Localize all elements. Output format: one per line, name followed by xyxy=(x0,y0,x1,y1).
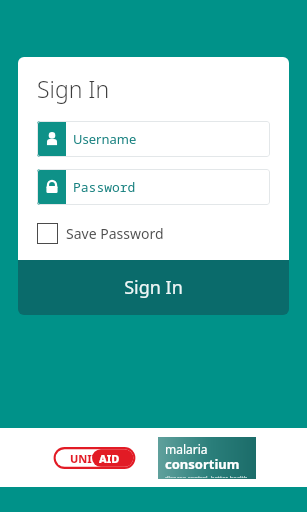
staticText: Save Password xyxy=(66,224,164,243)
staticText: UNIT xyxy=(70,451,99,466)
button[interactable]: Sign In xyxy=(18,260,289,315)
staticText: Sign In xyxy=(37,73,110,104)
button[interactable]: Username xyxy=(37,121,270,157)
staticText: malaria xyxy=(165,441,208,457)
staticText: disease control, better health xyxy=(165,474,248,478)
button[interactable]: Save Password xyxy=(37,222,164,245)
staticText: AID xyxy=(99,451,120,466)
button[interactable]: Malaria Consortium xyxy=(158,437,256,479)
button[interactable]: Unitaid xyxy=(51,441,138,475)
staticText: Password xyxy=(73,178,136,196)
staticText: consortium xyxy=(165,455,240,473)
staticText: Username xyxy=(73,130,137,148)
button[interactable]: Password xyxy=(37,169,270,205)
staticText: Sign In xyxy=(124,275,183,300)
